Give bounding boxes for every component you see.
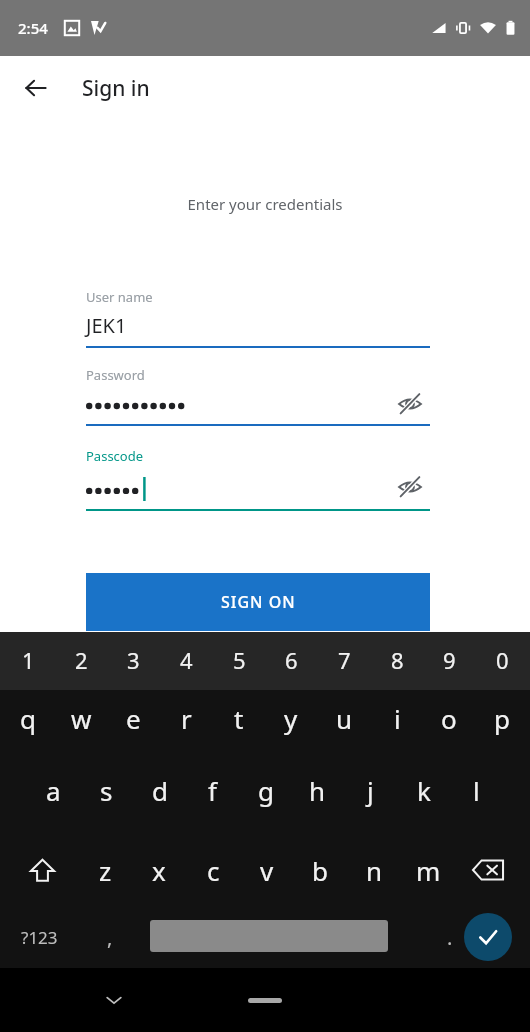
button[interactable]: w: [57, 690, 105, 746]
button[interactable]: n: [350, 838, 398, 902]
staticText: w: [71, 701, 92, 736]
button[interactable]: h: [294, 762, 341, 818]
staticText: 5: [233, 645, 246, 675]
staticText: z: [99, 853, 112, 888]
button[interactable]: Enter: [464, 913, 512, 961]
staticText: a: [46, 773, 61, 808]
staticText: 1: [22, 645, 35, 675]
button[interactable]: Hide keyboard: [92, 978, 136, 1022]
button[interactable]: Show password: [390, 384, 430, 424]
staticText: q: [20, 701, 36, 736]
staticText: l: [473, 773, 480, 808]
button[interactable]: o: [425, 690, 473, 746]
staticText: t: [234, 701, 244, 736]
button[interactable]: g: [242, 762, 289, 818]
button[interactable]: 9: [425, 632, 473, 688]
staticText: .: [447, 924, 453, 951]
button[interactable]: y: [267, 690, 315, 746]
button[interactable]: i: [373, 690, 421, 746]
staticText: SIGN ON: [221, 591, 296, 613]
button[interactable]: u: [320, 690, 368, 746]
button[interactable]: Backspace: [457, 838, 519, 902]
staticText: x: [152, 853, 166, 888]
button[interactable]: Home: [248, 998, 282, 1003]
button[interactable]: 8: [373, 632, 421, 688]
staticText: User name: [86, 288, 153, 306]
button[interactable]: .: [432, 909, 468, 965]
button[interactable]: d: [136, 762, 183, 818]
staticText: 3: [127, 645, 140, 675]
button[interactable]: Back: [12, 64, 60, 112]
staticText: 6: [285, 645, 298, 675]
button[interactable]: t: [215, 690, 263, 746]
staticText: 8: [391, 645, 404, 675]
button[interactable]: 4: [162, 632, 210, 688]
button[interactable]: f: [189, 762, 236, 818]
staticText: c: [207, 853, 220, 888]
button[interactable]: 2: [57, 632, 105, 688]
staticText: y: [284, 701, 298, 736]
staticText: 9: [443, 645, 456, 675]
button[interactable]: Password: [86, 366, 430, 426]
staticText: Password: [86, 366, 145, 384]
button[interactable]: 0: [478, 632, 526, 688]
button[interactable]: 5: [215, 632, 263, 688]
button[interactable]: 1: [4, 632, 52, 688]
staticText: u: [336, 701, 353, 736]
staticText: Passcode: [86, 447, 144, 465]
staticText: g: [258, 773, 274, 808]
staticText: Enter your credentials: [0, 194, 530, 214]
staticText: 2: [75, 645, 88, 675]
staticText: d: [152, 773, 168, 808]
staticText: f: [208, 773, 217, 808]
button[interactable]: ?123: [6, 909, 72, 965]
button[interactable]: s: [83, 762, 130, 818]
button[interactable]: x: [135, 838, 183, 902]
button[interactable]: Show passcode: [390, 467, 430, 507]
button[interactable]: 3: [109, 632, 157, 688]
staticText: m: [416, 853, 441, 888]
button[interactable]: SIGN ON: [86, 573, 430, 631]
staticText: k: [417, 773, 431, 808]
button[interactable]: ,: [88, 909, 132, 965]
button[interactable]: m: [404, 838, 452, 902]
button[interactable]: c: [189, 838, 237, 902]
button[interactable]: r: [162, 690, 210, 746]
button[interactable]: v: [243, 838, 291, 902]
button[interactable]: 6: [267, 632, 315, 688]
staticText: p: [494, 701, 510, 736]
button[interactable]: l: [453, 762, 500, 818]
button[interactable]: e: [109, 690, 157, 746]
button[interactable]: q: [4, 690, 52, 746]
button[interactable]: z: [81, 838, 129, 902]
button[interactable]: b: [296, 838, 344, 902]
staticText: o: [441, 701, 457, 736]
staticText: r: [181, 701, 192, 736]
button[interactable]: Passcode: [86, 447, 430, 511]
staticText: Sign in: [82, 74, 150, 103]
button[interactable]: a: [30, 762, 77, 818]
staticText: 7: [338, 645, 351, 675]
staticText: ?123: [21, 926, 58, 949]
staticText: b: [312, 853, 328, 888]
button[interactable]: 7: [320, 632, 368, 688]
staticText: i: [394, 701, 401, 736]
staticText: 2:54: [18, 18, 48, 38]
staticText: v: [260, 853, 274, 888]
staticText: 0: [496, 645, 509, 675]
staticText: JEK1: [86, 312, 127, 339]
button[interactable]: User name: [86, 288, 430, 348]
staticText: ,: [107, 924, 113, 951]
staticText: e: [126, 701, 141, 736]
staticText: 4: [180, 645, 193, 675]
staticText: h: [309, 773, 326, 808]
button[interactable]: j: [347, 762, 394, 818]
button[interactable]: k: [400, 762, 447, 818]
button[interactable]: Shift: [11, 838, 73, 902]
button[interactable]: p: [478, 690, 526, 746]
staticText: j: [367, 773, 374, 808]
staticText: n: [366, 853, 383, 888]
staticText: s: [100, 773, 113, 808]
